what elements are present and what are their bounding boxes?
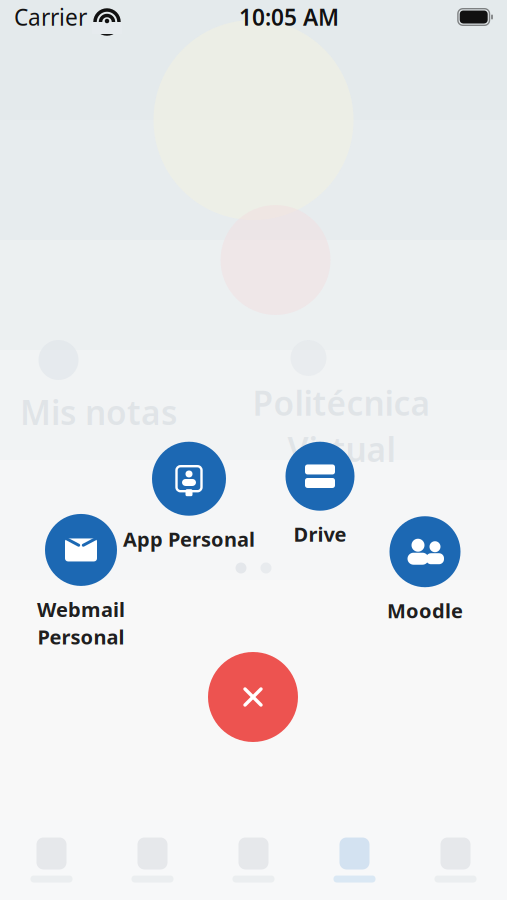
button[interactable]: Webmail: [37, 514, 125, 650]
button[interactable]: Close menu: [208, 652, 298, 742]
button[interactable]: Moodle: [387, 516, 463, 624]
staticText: 10:05 AM: [239, 2, 339, 32]
staticText: Drive: [293, 521, 346, 547]
staticText: Webmail: [37, 596, 125, 622]
staticText: App Personal: [123, 526, 255, 552]
staticText: Moodle: [387, 597, 463, 624]
staticText: Politécnica: [252, 381, 430, 425]
button[interactable]: Drive: [285, 442, 354, 547]
staticText: Mis notas: [20, 390, 177, 434]
staticText: Virtual: [287, 427, 395, 471]
button[interactable]: App Personal: [123, 442, 255, 552]
staticText: Carrier: [14, 2, 87, 32]
staticText: Personal: [37, 623, 124, 650]
